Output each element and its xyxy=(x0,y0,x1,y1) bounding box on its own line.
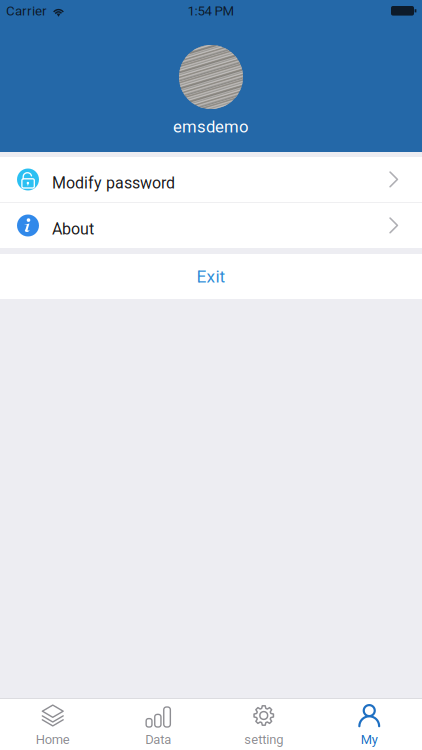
staticText: Exit xyxy=(196,266,225,287)
staticText: Modify password xyxy=(52,174,175,192)
button[interactable]: Modify password xyxy=(0,157,422,202)
staticText: emsdemo xyxy=(173,117,249,136)
button[interactable]: About xyxy=(0,203,422,248)
staticText: Data xyxy=(145,732,171,747)
button[interactable]: setting xyxy=(211,699,316,750)
button[interactable]: Exit xyxy=(0,254,422,299)
staticText: Carrier xyxy=(6,3,47,19)
staticText: About xyxy=(52,220,94,238)
staticText: setting xyxy=(244,732,283,747)
button[interactable]: Data xyxy=(105,699,211,750)
staticText: 1:54 PM xyxy=(187,3,234,19)
button[interactable]: Home xyxy=(0,699,105,750)
staticText: Home xyxy=(36,732,70,747)
button[interactable]: My xyxy=(316,699,422,750)
staticText: My xyxy=(361,732,378,747)
